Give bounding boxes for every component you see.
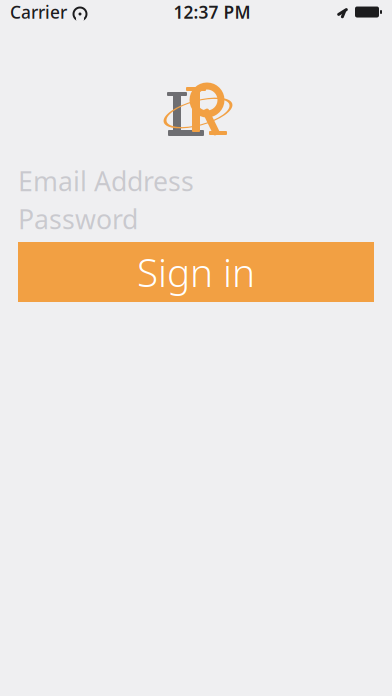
- button[interactable]: Email Address: [0, 162, 392, 200]
- staticText: Carrier: [10, 0, 67, 23]
- button[interactable]: Password: [0, 200, 392, 238]
- button[interactable]: Sign in: [18, 242, 374, 302]
- staticText: Email Address: [18, 163, 194, 199]
- staticText: Sign in: [137, 246, 255, 298]
- staticText: Password: [18, 201, 138, 237]
- staticText: 12:37 PM: [173, 0, 250, 23]
